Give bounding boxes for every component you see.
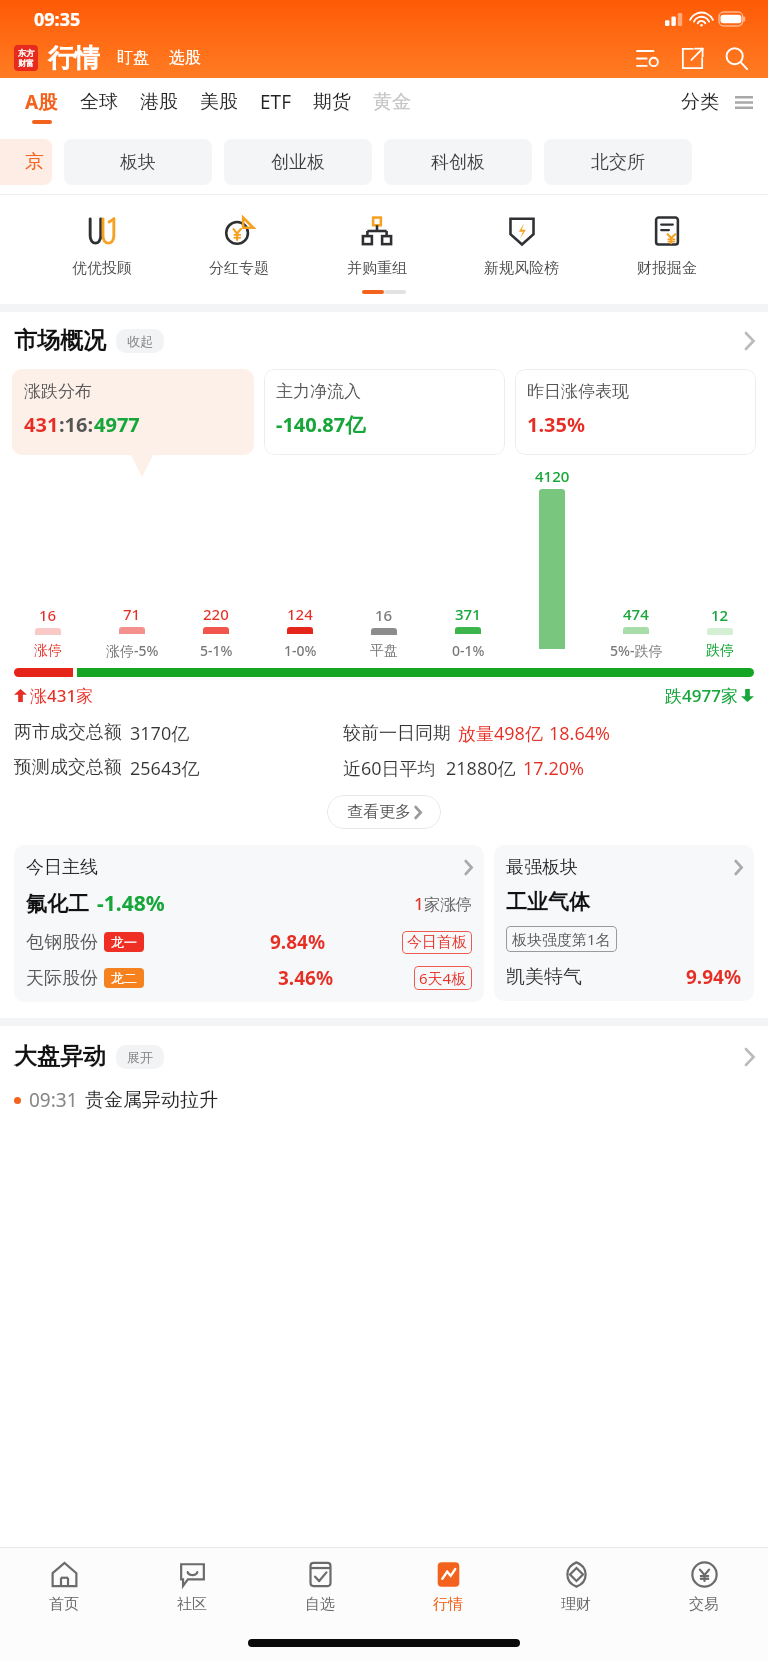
staticText: 全球 [80, 90, 118, 114]
button[interactable]: 并购重组 [341, 209, 413, 280]
button[interactable]: 71 [90, 604, 174, 660]
button[interactable]: 科创板 [384, 139, 532, 185]
button[interactable]: 北交所 [544, 139, 692, 185]
button[interactable]: 12 [678, 605, 762, 660]
button[interactable]: 盯盘 [114, 42, 152, 74]
staticText: 社区 [177, 1595, 207, 1614]
button[interactable]: 涨跌分布 [12, 369, 254, 455]
staticText: 昨日涨停表现 [527, 381, 629, 402]
button[interactable]: 全球 [69, 78, 129, 130]
button[interactable]: 社区 [128, 1548, 256, 1624]
button[interactable]: 美股 [189, 78, 249, 130]
staticText: 21880亿 [446, 756, 516, 781]
staticText: 交易 [689, 1595, 719, 1614]
staticText: 盯盘 [117, 48, 149, 68]
staticText: 17.20% [523, 756, 584, 781]
staticText: 71 [123, 604, 141, 624]
button[interactable]: Search [718, 40, 754, 76]
button[interactable]: 220 [174, 604, 258, 660]
staticText: 主力净流入 [276, 381, 361, 402]
staticText: ETF [260, 89, 291, 115]
staticText: 4977 [94, 411, 140, 438]
staticText: 16 [375, 605, 393, 625]
button[interactable]: 首页 [0, 1548, 128, 1624]
staticText: 9.84% [270, 929, 326, 955]
staticText: 展开 [127, 1049, 153, 1065]
staticText: 美股 [200, 90, 238, 114]
button[interactable]: 124 [258, 604, 342, 660]
button[interactable]: 昨日涨停表现 [515, 369, 756, 455]
staticText: 两市成交总额 [14, 721, 122, 744]
button[interactable]: 分红专题 [203, 209, 275, 280]
staticText: 25643亿 [130, 756, 200, 781]
staticText: 大盘异动 [14, 1042, 106, 1071]
button[interactable]: 财报掘金 [631, 209, 703, 280]
staticText: 京 [25, 150, 44, 174]
staticText: 12 [711, 605, 729, 625]
staticText: 板块 [120, 151, 156, 174]
staticText: 分红专题 [209, 259, 269, 278]
button[interactable]: ETF [249, 78, 302, 130]
staticText: 行情 [48, 42, 100, 75]
button[interactable]: 京 [0, 139, 52, 185]
staticText: 1-0% [284, 641, 317, 660]
staticText: 近60日平均 [343, 756, 436, 781]
staticText: 今日主线 [26, 856, 98, 879]
button[interactable]: 港股 [129, 78, 189, 130]
staticText: 选股 [169, 48, 201, 68]
staticText: 龙二 [111, 970, 137, 986]
staticText: 自选 [305, 1595, 335, 1614]
button[interactable]: 新规风险榜 [478, 209, 565, 280]
button[interactable]: 大盘异动 [0, 1042, 768, 1071]
staticText: 18.64% [549, 721, 610, 746]
staticText: 查看更多 [347, 802, 411, 822]
button[interactable]: 主力净流入 [264, 369, 505, 455]
button[interactable]: 4120 [510, 466, 594, 660]
button[interactable]: Share [674, 40, 710, 76]
button[interactable]: 理财 [512, 1548, 640, 1624]
button[interactable]: 黄金 [362, 78, 422, 130]
button[interactable]: 查看更多 [327, 795, 441, 829]
staticText: 新规风险榜 [484, 259, 559, 278]
staticText: 16 [39, 605, 57, 625]
button[interactable]: A股 [14, 78, 69, 130]
button[interactable]: 选股 [166, 42, 204, 74]
button[interactable]: 最强板块 [494, 845, 754, 1001]
staticText: 跌停 [706, 642, 734, 660]
button[interactable]: 期货 [302, 78, 362, 130]
staticText: 09:31 [29, 1087, 78, 1113]
staticText: 4120 [535, 466, 570, 486]
staticText: 涨停-5% [106, 641, 159, 660]
button[interactable]: 交易 [640, 1548, 768, 1624]
button[interactable]: 行情 [384, 1548, 512, 1624]
button[interactable]: 474 [594, 604, 678, 660]
button[interactable]: Settings [630, 40, 666, 76]
staticText: 0-1% [452, 641, 485, 660]
staticText: 财报掘金 [637, 259, 697, 278]
staticText: 474 [623, 604, 649, 624]
button[interactable]: 创业板 [224, 139, 372, 185]
button[interactable]: 今日主线 [14, 845, 484, 1002]
staticText: 理财 [561, 1595, 591, 1614]
staticText: 贵金属异动拉升 [85, 1088, 218, 1112]
staticText: 创业板 [271, 151, 325, 174]
button[interactable]: 板块 [64, 139, 212, 185]
staticText: 港股 [140, 90, 178, 114]
staticText: 今日首板 [407, 933, 467, 952]
button[interactable]: 优优投顾 [66, 209, 138, 280]
button[interactable]: All categories [726, 84, 762, 120]
button[interactable]: 09:31 [0, 1087, 768, 1113]
button[interactable]: 16 [6, 605, 90, 660]
button[interactable]: 自选 [256, 1548, 384, 1624]
button[interactable]: East Money logo [14, 45, 38, 71]
staticText: 优优投顾 [72, 259, 132, 278]
button[interactable]: 371 [426, 604, 510, 660]
button[interactable]: 分类 [674, 82, 726, 122]
staticText: 包钢股份 [26, 931, 98, 954]
staticText: A股 [25, 89, 58, 115]
staticText: 工业气体 [506, 889, 590, 915]
button[interactable]: 市场概况 [0, 326, 768, 355]
staticText: -1.48% [97, 889, 165, 918]
button[interactable]: 16 [342, 605, 426, 660]
